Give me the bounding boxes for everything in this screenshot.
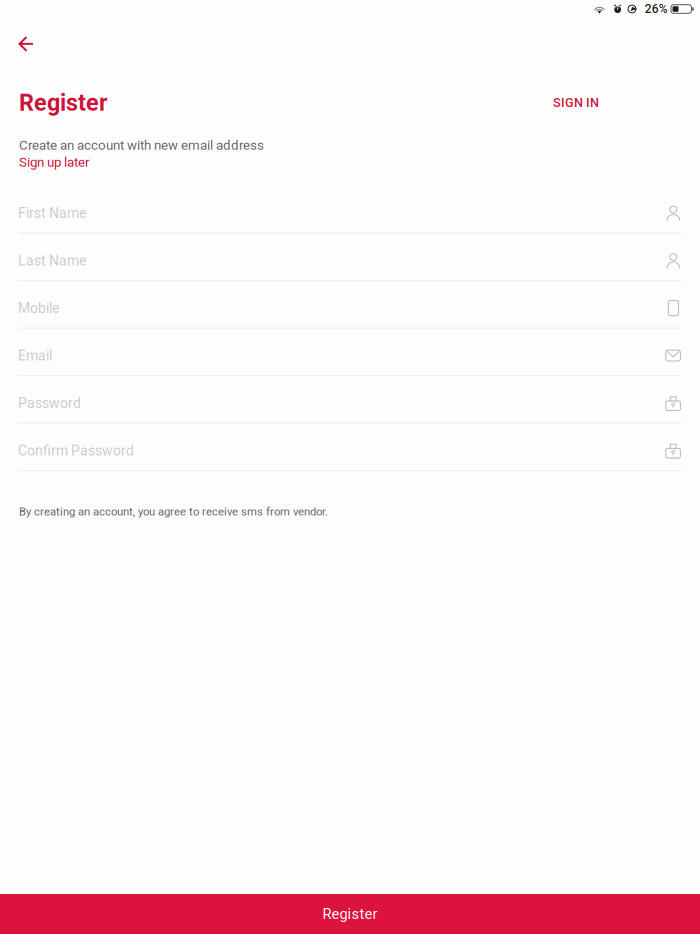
staticText: Password	[18, 395, 81, 411]
staticText: Email	[18, 347, 52, 364]
staticText: Last Name	[18, 252, 86, 269]
staticText: Register	[19, 89, 108, 116]
staticText: Create an account with new email address	[19, 137, 264, 153]
staticText: SIGN IN	[553, 95, 599, 110]
staticText: Register	[322, 905, 377, 923]
staticText: Mobile	[18, 300, 59, 316]
button[interactable]: SIGN IN	[547, 89, 605, 116]
button[interactable]: Back	[7, 28, 45, 60]
button[interactable]: Register	[0, 894, 700, 934]
staticText: Sign up later	[19, 154, 90, 170]
staticText: 26%	[645, 2, 668, 16]
staticText: By creating an account, you agree to rec…	[19, 505, 328, 518]
staticText: First Name	[18, 205, 86, 221]
staticText: Confirm Password	[18, 442, 134, 459]
button[interactable]: Sign up later	[19, 154, 90, 170]
